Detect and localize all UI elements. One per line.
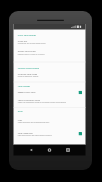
staticText: Select Resources and Transparencies link…	[18, 121, 49, 124]
staticText: Preferred Travel Mode	[18, 72, 37, 75]
staticText: Prayer Times Settings	[18, 34, 36, 36]
staticText: Mode by walking or driving	[18, 75, 38, 77]
staticText: Send Usage Data	[18, 131, 33, 134]
staticText: Select the notification sound for the pr…	[18, 101, 66, 103]
button[interactable]: Alarm Settings	[18, 84, 30, 89]
button[interactable]: Prayer Times Settings	[18, 32, 36, 37]
staticText: Other	[18, 110, 23, 112]
button[interactable]: Preferred Travel Mode	[13, 69, 85, 80]
button[interactable]: Adhan Notification Sound	[13, 95, 85, 106]
button[interactable]: Links	[13, 116, 85, 126]
staticText: Links	[18, 119, 22, 121]
button[interactable]: Back	[27, 146, 35, 154]
button[interactable]: Recents	[64, 146, 72, 154]
staticText: Display Time in 12 hour or 24 hours	[18, 53, 45, 55]
button[interactable]: Repeat Prayer Alarm	[13, 87, 85, 98]
staticText: Repeat Prayer Alarm	[18, 91, 36, 94]
staticText: Prayer Day	[18, 39, 27, 42]
staticText: Choose the city to show prayer times	[18, 42, 46, 44]
staticText: Alarm Settings	[18, 85, 30, 87]
button[interactable]: Mosques Nearby Settings	[18, 66, 39, 71]
button[interactable]: Send Usage Data	[13, 128, 85, 139]
button[interactable]: Other	[18, 108, 23, 113]
button[interactable]: Prayer Day	[13, 36, 85, 47]
staticText: Display Time Format	[18, 50, 36, 53]
staticText: Adhan Notification Sound	[18, 98, 40, 101]
staticText: Help improve this app using Google Analy…	[18, 134, 52, 136]
button[interactable]: Home	[45, 146, 53, 154]
staticText: Mosques Nearby Settings	[18, 67, 39, 70]
button[interactable]: Display Time Format	[13, 47, 85, 58]
